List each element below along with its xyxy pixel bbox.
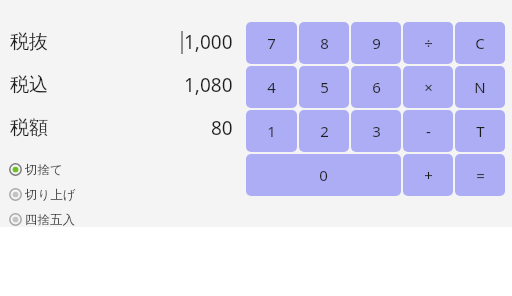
staticText: 税抜 xyxy=(10,30,48,54)
button[interactable]: - xyxy=(403,110,453,152)
button[interactable]: 3 xyxy=(351,110,401,152)
button[interactable]: 0 xyxy=(246,154,401,196)
staticText: 5 xyxy=(320,77,329,97)
button[interactable]: × xyxy=(403,66,453,108)
button[interactable]: 8 xyxy=(299,22,349,64)
staticText: 1 xyxy=(267,121,276,141)
staticText: - xyxy=(426,121,431,141)
staticText: T xyxy=(476,121,485,141)
staticText: 4 xyxy=(267,77,276,97)
button[interactable]: 4 xyxy=(246,66,297,108)
button[interactable]: 5 xyxy=(299,66,349,108)
staticText: 切捨て xyxy=(25,162,63,178)
button[interactable]: 2 xyxy=(299,110,349,152)
staticText: 7 xyxy=(267,33,276,53)
staticText: 0 xyxy=(319,165,328,185)
button[interactable]: 税込 xyxy=(0,63,243,106)
staticText: 80 xyxy=(211,115,233,141)
staticText: C xyxy=(475,33,485,53)
staticText: 1,080 xyxy=(184,72,233,98)
button[interactable]: 7 xyxy=(246,22,297,64)
staticText: = xyxy=(476,165,485,185)
button[interactable]: 6 xyxy=(351,66,401,108)
button[interactable]: = xyxy=(455,154,505,196)
staticText: 3 xyxy=(372,121,381,141)
staticText: 税込 xyxy=(10,73,48,97)
button[interactable]: 切捨て xyxy=(0,157,243,182)
button[interactable]: 1 xyxy=(246,110,297,152)
button[interactable]: 税抜 xyxy=(0,20,243,63)
staticText: 1,000 xyxy=(184,29,233,55)
button[interactable]: N xyxy=(455,66,505,108)
button[interactable]: + xyxy=(403,154,453,196)
button[interactable]: T xyxy=(455,110,505,152)
staticText: 8 xyxy=(320,33,329,53)
staticText: 2 xyxy=(320,121,329,141)
staticText: 税額 xyxy=(10,116,48,140)
staticText: N xyxy=(474,77,486,97)
staticText: + xyxy=(424,165,433,185)
staticText: 6 xyxy=(372,77,381,97)
button[interactable]: C xyxy=(455,22,505,64)
button[interactable]: ÷ xyxy=(403,22,453,64)
staticText: ÷ xyxy=(424,33,433,53)
button[interactable]: 切り上げ xyxy=(0,182,243,207)
staticText: 四捨五入 xyxy=(25,212,75,228)
staticText: 切り上げ xyxy=(25,187,76,203)
staticText: 9 xyxy=(372,33,381,53)
button[interactable]: 税額 xyxy=(0,106,243,149)
button[interactable]: 四捨五入 xyxy=(0,207,243,232)
staticText: × xyxy=(424,77,433,97)
button[interactable]: 9 xyxy=(351,22,401,64)
